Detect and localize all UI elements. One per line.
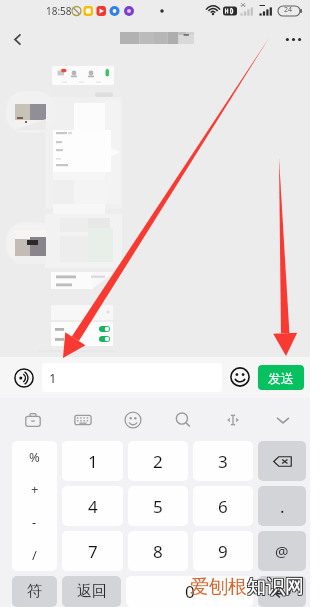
staticText: @ [275, 541, 289, 561]
button[interactable]: 4 [62, 486, 123, 526]
staticText: 7 [88, 540, 98, 563]
button[interactable]: % [12, 441, 57, 571]
button[interactable]: 9 [193, 531, 253, 571]
staticText: 3 [218, 450, 228, 473]
button[interactable]: Emoji [108, 398, 158, 441]
staticText: 0 [185, 580, 195, 603]
staticText: 知识网 [247, 574, 304, 598]
button[interactable]: 1 [62, 441, 123, 481]
button[interactable]: Period [258, 486, 306, 526]
button[interactable]: Keyboard [58, 398, 108, 441]
button[interactable]: More options [276, 22, 310, 56]
staticText: 知识网 [248, 575, 305, 599]
staticText: 1 [88, 450, 98, 473]
staticText: / [32, 546, 37, 564]
button[interactable]: Cursor [208, 398, 258, 441]
button[interactable]: Clipboard [8, 398, 58, 441]
button[interactable]: Voice input [12, 366, 35, 389]
staticText: 18:58 [46, 4, 72, 18]
button[interactable]: 2 [128, 441, 188, 481]
staticText: 9 [218, 540, 228, 563]
button[interactable]: Enter [258, 576, 306, 607]
button[interactable]: Emoji [229, 366, 251, 388]
button[interactable]: Search [158, 398, 208, 441]
button[interactable]: 3 [193, 441, 253, 481]
staticText: 知识网 [246, 575, 303, 599]
button[interactable]: Collapse [258, 398, 308, 441]
staticText: 5 [153, 495, 163, 518]
button[interactable]: 符 [12, 576, 57, 607]
staticText: 返回 [77, 582, 107, 601]
staticText: 爱刨根 [190, 575, 247, 599]
button[interactable]: 5 [128, 486, 188, 526]
staticText: 符 [27, 582, 42, 601]
button[interactable]: 1 [42, 363, 222, 392]
staticText: 6 [218, 495, 228, 518]
button[interactable]: 7 [62, 531, 123, 571]
staticText: 知识网 [246, 576, 303, 600]
staticText: - [32, 513, 37, 531]
button[interactable]: Backspace [258, 441, 306, 481]
button[interactable]: 6 [193, 486, 253, 526]
staticText: 24 [284, 5, 293, 15]
staticText: 2 [153, 450, 163, 473]
staticText: 1 [49, 369, 57, 387]
button[interactable]: At sign [258, 531, 306, 571]
staticText: . [280, 495, 285, 518]
staticText: 8 [153, 540, 163, 563]
staticText: 知识网 [248, 574, 305, 598]
staticText: 知识网 [248, 576, 305, 600]
button[interactable]: 发送 [258, 365, 304, 390]
staticText: 知识网 [247, 575, 304, 599]
staticText: + [31, 480, 39, 498]
staticText: % [29, 448, 40, 466]
button[interactable]: Back [0, 22, 34, 56]
staticText: 4 [88, 495, 98, 518]
staticText: 知识网 [246, 574, 303, 598]
button[interactable]: 0 [126, 576, 253, 607]
staticText: 知识网 [247, 576, 304, 600]
staticText: 发送 [268, 370, 294, 386]
button[interactable]: 8 [128, 531, 188, 571]
button[interactable]: 返回 [62, 576, 121, 607]
